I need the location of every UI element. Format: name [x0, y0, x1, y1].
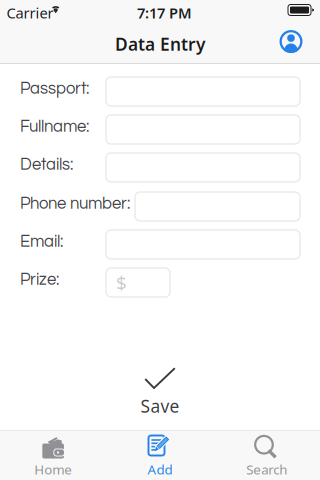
staticText: 7:17 PM — [137, 3, 192, 22]
staticText: Save — [140, 394, 179, 417]
button[interactable]: Home — [0, 430, 107, 480]
button[interactable]: Search — [213, 430, 320, 480]
staticText: Prize: — [20, 271, 59, 288]
button[interactable]: Passport: — [106, 77, 300, 106]
staticText: Email: — [20, 233, 63, 250]
staticText: $ — [116, 270, 127, 295]
staticText: Add — [147, 460, 172, 478]
button[interactable]: Phone number: — [135, 192, 300, 221]
staticText: Home — [34, 460, 72, 478]
staticText: Fullname: — [20, 118, 89, 135]
button[interactable]: Account — [269, 20, 313, 62]
button[interactable]: Prize: — [106, 268, 170, 297]
button[interactable]: Add — [107, 430, 213, 480]
staticText: Phone number: — [20, 195, 130, 212]
button[interactable]: Fullname: — [106, 115, 300, 144]
button[interactable]: Save — [115, 356, 205, 420]
staticText: Data Entry — [115, 32, 205, 55]
staticText: Details: — [20, 156, 73, 173]
button[interactable]: Details: — [106, 153, 300, 182]
staticText: Carrier — [6, 3, 53, 22]
button[interactable]: Email: — [106, 230, 300, 259]
staticText: Passport: — [20, 80, 89, 97]
staticText: Search — [246, 460, 287, 478]
